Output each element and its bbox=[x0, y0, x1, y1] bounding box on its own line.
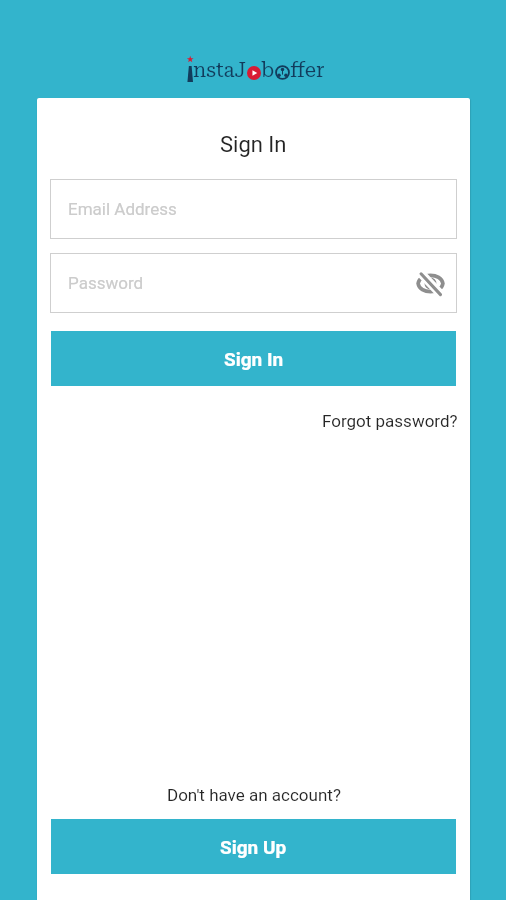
staticText: nstaJ bbox=[193, 58, 247, 82]
button[interactable]: Show password bbox=[410, 263, 450, 303]
staticText: Sign Up bbox=[220, 836, 287, 858]
button[interactable]: Sign In bbox=[51, 331, 456, 386]
staticText: Don't have an account? bbox=[167, 785, 341, 805]
button[interactable]: Forgot password? bbox=[322, 411, 458, 431]
staticText: Sign In bbox=[220, 132, 287, 158]
staticText: Password bbox=[68, 273, 144, 293]
staticText: b bbox=[261, 58, 275, 82]
button[interactable]: Sign Up bbox=[51, 819, 456, 874]
staticText: Sign In bbox=[224, 348, 284, 370]
staticText: Email Address bbox=[68, 199, 177, 219]
button[interactable]: Email Address bbox=[50, 179, 457, 239]
staticText: ffer bbox=[290, 58, 325, 82]
button[interactable]: Password bbox=[50, 253, 457, 313]
